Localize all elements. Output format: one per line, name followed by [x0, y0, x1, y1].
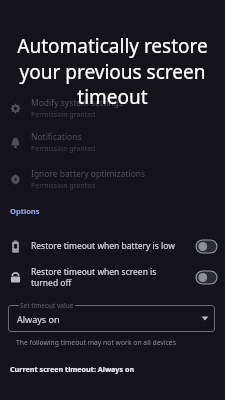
button[interactable]: Restore timeout when battery is low	[0, 231, 225, 261]
button[interactable]: Notifications	[0, 128, 225, 156]
other: Toggle	[196, 271, 217, 284]
staticText: The following timeout may not work on al…	[16, 338, 176, 347]
button[interactable]: Ignore battery optimizations	[0, 165, 225, 193]
button[interactable]: Modify system settings	[0, 94, 225, 122]
staticText: Automatically restore your previous scre…	[8, 33, 217, 109]
other: Toggle	[196, 240, 217, 253]
button[interactable]: Always on	[8, 305, 215, 332]
staticText: Restore timeout when battery is low	[31, 240, 196, 252]
staticText: Restore timeout when screen is turned of…	[31, 266, 171, 288]
staticText: Options	[10, 206, 40, 216]
staticText: Current screen timeout: Always on	[10, 364, 135, 374]
staticText: Modify system settings	[31, 97, 123, 109]
staticText: Always on	[17, 313, 60, 325]
button[interactable]: Restore timeout when screen is turned of…	[0, 262, 225, 292]
staticText: Notifications	[31, 131, 82, 143]
staticText: Ignore battery optimizations	[31, 168, 146, 180]
staticText: Permission granted	[31, 110, 96, 120]
staticText: Permission granted	[31, 144, 96, 154]
staticText: Set timeout value	[20, 301, 74, 310]
staticText: Permission granted	[31, 181, 96, 191]
